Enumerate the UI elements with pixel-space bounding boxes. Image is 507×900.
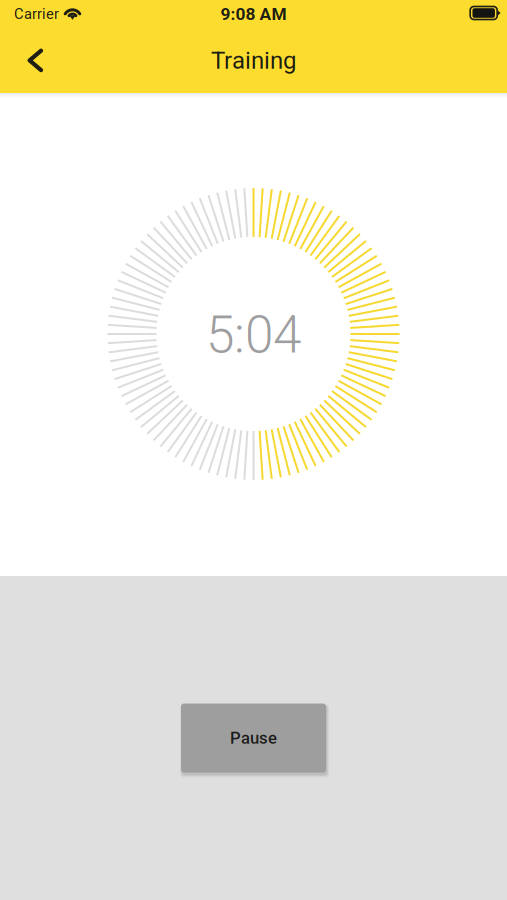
staticText: 5:04 [206, 305, 301, 365]
staticText: Training [211, 46, 296, 74]
staticText: 9:08 AM [220, 4, 286, 24]
button[interactable]: Pause [179, 701, 328, 775]
staticText: Carrier [14, 5, 59, 23]
staticText: Pause [230, 728, 277, 748]
button[interactable]: Back [0, 37, 61, 83]
